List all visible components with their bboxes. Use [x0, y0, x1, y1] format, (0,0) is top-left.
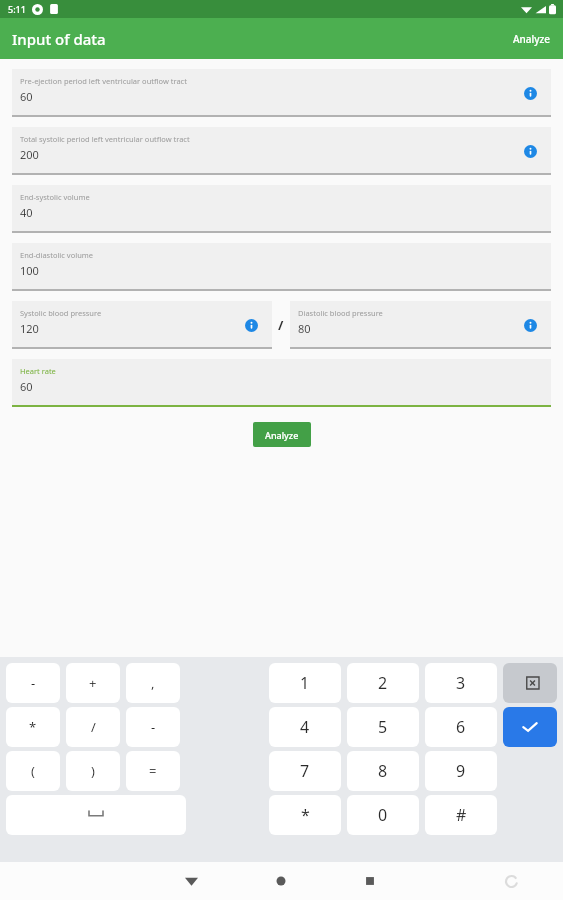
staticText: Analyze — [513, 32, 551, 46]
staticText: End-diastolic volume — [20, 250, 94, 260]
button[interactable]: Diastolic blood pressure — [290, 301, 551, 349]
staticText: Systolic blood pressure — [20, 308, 102, 318]
button[interactable]: # — [425, 795, 497, 835]
button[interactable]: 1 — [269, 663, 341, 703]
staticText: Heart rate — [20, 366, 56, 376]
button[interactable]: 3 — [425, 663, 497, 703]
staticText: 3 — [456, 672, 466, 694]
button[interactable]: Analyze — [253, 422, 311, 447]
staticText: Input of data — [12, 29, 106, 49]
button[interactable]: 4 — [269, 707, 341, 747]
button[interactable]: , — [126, 663, 180, 703]
button[interactable]: Total systolic period left ventricular o… — [12, 127, 551, 175]
staticText: Total systolic period left ventricular o… — [20, 134, 190, 144]
staticText: - — [31, 674, 36, 692]
staticText: Diastolic blood pressure — [298, 308, 383, 318]
staticText: # — [456, 804, 467, 826]
button[interactable]: Information about Pre-ejection period le… — [519, 82, 541, 104]
staticText: * — [301, 804, 310, 826]
button[interactable]: - — [126, 707, 180, 747]
staticText: Pre-ejection period left ventricular out… — [20, 76, 187, 86]
button[interactable]: Enter — [503, 707, 557, 747]
button[interactable]: + — [66, 663, 120, 703]
button[interactable]: ( — [6, 751, 60, 791]
button[interactable]: Heart rate — [12, 359, 551, 407]
staticText: 60 — [20, 379, 33, 394]
staticText: / — [91, 718, 96, 736]
button[interactable]: 2 — [347, 663, 419, 703]
staticText: 120 — [20, 321, 39, 336]
staticText: 6 — [456, 716, 466, 738]
staticText: 60 — [20, 89, 33, 104]
staticText: * — [29, 718, 37, 736]
button[interactable]: Space — [6, 795, 186, 835]
staticText: 200 — [20, 147, 39, 162]
button[interactable]: Backspace — [503, 663, 557, 703]
button[interactable]: / — [66, 707, 120, 747]
staticText: ) — [91, 762, 95, 780]
staticText: 100 — [20, 263, 39, 278]
staticText: 1 — [300, 672, 310, 694]
staticText: Analyze — [265, 429, 299, 441]
button[interactable]: - — [6, 663, 60, 703]
button[interactable]: * — [6, 707, 60, 747]
staticText: 9 — [456, 760, 466, 782]
button[interactable]: Recent apps — [363, 874, 377, 888]
button[interactable]: Information about Diastolic blood pressu… — [519, 314, 541, 336]
staticText: End-systolic volume — [20, 192, 90, 202]
staticText: + — [89, 674, 97, 692]
button[interactable]: Information about Systolic blood pressur… — [240, 314, 262, 336]
button[interactable]: Analyze — [501, 24, 563, 54]
staticText: 5 — [378, 716, 388, 738]
button[interactable]: * — [269, 795, 341, 835]
staticText: 2 — [378, 672, 388, 694]
button[interactable]: 9 — [425, 751, 497, 791]
button[interactable]: Home — [274, 874, 288, 888]
staticText: / — [278, 316, 284, 334]
button[interactable]: End-systolic volume — [12, 185, 551, 233]
button[interactable]: 8 — [347, 751, 419, 791]
button[interactable]: 6 — [425, 707, 497, 747]
button[interactable]: Pre-ejection period left ventricular out… — [12, 69, 551, 117]
staticText: 8 — [378, 760, 388, 782]
staticText: 0 — [378, 804, 388, 826]
staticText: ( — [31, 762, 35, 780]
button[interactable]: 7 — [269, 751, 341, 791]
staticText: 40 — [20, 205, 33, 220]
staticText: , — [151, 674, 155, 692]
button[interactable]: Information about Total systolic period … — [519, 140, 541, 162]
button[interactable]: 5 — [347, 707, 419, 747]
button[interactable]: 0 — [347, 795, 419, 835]
staticText: = — [149, 762, 157, 780]
staticText: 7 — [300, 760, 310, 782]
button[interactable]: End-diastolic volume — [12, 243, 551, 291]
button[interactable]: Systolic blood pressure — [12, 301, 272, 349]
staticText: 4 — [300, 716, 310, 738]
staticText: 80 — [298, 321, 311, 336]
staticText: 5:11 — [8, 3, 26, 15]
button[interactable]: = — [126, 751, 180, 791]
staticText: - — [151, 718, 156, 736]
button[interactable]: ) — [66, 751, 120, 791]
